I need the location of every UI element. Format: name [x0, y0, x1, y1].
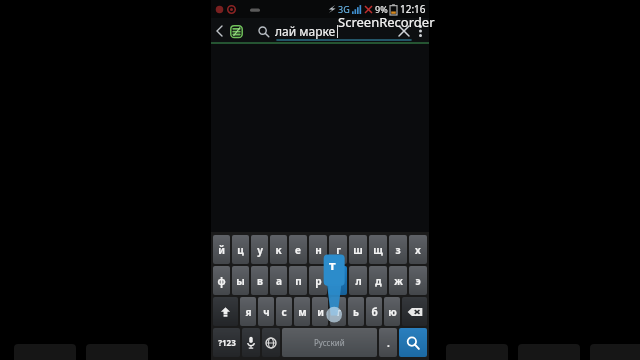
staticText: ф	[217, 274, 226, 288]
button[interactable]: Voice input	[242, 328, 260, 357]
staticText: у	[257, 243, 263, 257]
button[interactable]: щ	[369, 235, 387, 264]
button[interactable]: а	[270, 266, 287, 295]
staticText: з	[395, 243, 401, 257]
staticText: 9%	[375, 3, 388, 15]
staticText: ш	[353, 243, 363, 257]
staticText: д	[375, 274, 382, 288]
other: Shift	[213, 297, 238, 326]
button[interactable]: ц	[232, 235, 249, 264]
staticText: к	[275, 243, 282, 257]
staticText: и	[317, 305, 324, 319]
button[interactable]: Русский	[282, 328, 377, 357]
staticText: ц	[237, 243, 244, 257]
button[interactable]: б	[366, 297, 382, 326]
staticText: е	[295, 243, 301, 257]
button[interactable]: й	[213, 235, 230, 264]
staticText: ж	[394, 274, 403, 288]
button[interactable]: ж	[389, 266, 407, 295]
button[interactable]: ф	[213, 266, 230, 295]
button[interactable]: т	[330, 297, 346, 326]
button[interactable]: Search	[399, 328, 427, 357]
staticText: 3G	[338, 3, 350, 15]
staticText: э	[415, 274, 421, 288]
staticText: л	[355, 274, 362, 288]
button[interactable]: м	[294, 297, 310, 326]
staticText: лай марке	[275, 23, 336, 39]
staticText: ь	[353, 305, 359, 319]
staticText: .	[387, 336, 390, 350]
button[interactable]: Backspace	[402, 297, 427, 326]
button[interactable]: Clear	[394, 20, 414, 42]
button[interactable]: с	[276, 297, 292, 326]
button[interactable]: е	[289, 235, 307, 264]
button[interactable]: я	[240, 297, 256, 326]
button[interactable]: Play Store	[226, 21, 246, 41]
button[interactable]: и	[312, 297, 328, 326]
button[interactable]: р	[309, 266, 327, 295]
button[interactable]: п	[289, 266, 307, 295]
other: Voice input	[242, 328, 260, 357]
button[interactable]: з	[389, 235, 407, 264]
button[interactable]: Shift	[213, 297, 238, 326]
staticText: Русский	[314, 337, 345, 348]
other: Backspace	[402, 297, 427, 326]
staticText: й	[218, 243, 225, 257]
staticText: щ	[373, 243, 383, 257]
staticText: м	[298, 305, 307, 319]
button[interactable]: Change language	[262, 328, 280, 357]
button[interactable]: э	[409, 266, 427, 295]
button[interactable]: ш	[349, 235, 367, 264]
button[interactable]: л	[349, 266, 367, 295]
button[interactable]: ю	[384, 297, 400, 326]
staticText: в	[257, 274, 263, 288]
staticText: 12:16	[400, 2, 426, 16]
staticText: х	[415, 243, 421, 257]
button[interactable]: г	[329, 235, 347, 264]
button[interactable]: ?123	[213, 328, 240, 357]
button[interactable]: д	[369, 266, 387, 295]
button[interactable]: ы	[232, 266, 249, 295]
button[interactable]: х	[409, 235, 427, 264]
button[interactable]: в	[251, 266, 268, 295]
staticText: ScreenRecorder	[338, 13, 435, 31]
staticText: г	[336, 243, 341, 257]
button[interactable]: .	[379, 328, 397, 357]
button[interactable]: ь	[348, 297, 364, 326]
staticText: ?123	[218, 337, 236, 348]
button[interactable]: к	[270, 235, 287, 264]
other: Change language	[262, 328, 280, 357]
staticText: ы	[236, 274, 245, 288]
staticText: ч	[263, 305, 270, 319]
staticText: т	[335, 305, 341, 319]
button[interactable]: т	[329, 266, 347, 295]
staticText: я	[245, 305, 252, 319]
button[interactable]: Search	[255, 23, 271, 39]
staticText: н	[315, 243, 322, 257]
staticText: с	[281, 305, 287, 319]
staticText: т	[329, 256, 336, 274]
staticText: б	[371, 305, 378, 319]
button[interactable]: н	[309, 235, 327, 264]
staticText: ю	[388, 305, 397, 319]
button[interactable]: More options	[414, 20, 427, 42]
button[interactable]: ч	[258, 297, 274, 326]
button[interactable]: Back	[214, 20, 224, 42]
staticText: р	[315, 274, 322, 288]
staticText: п	[295, 274, 302, 288]
staticText: а	[276, 274, 282, 288]
button[interactable]: у	[251, 235, 268, 264]
